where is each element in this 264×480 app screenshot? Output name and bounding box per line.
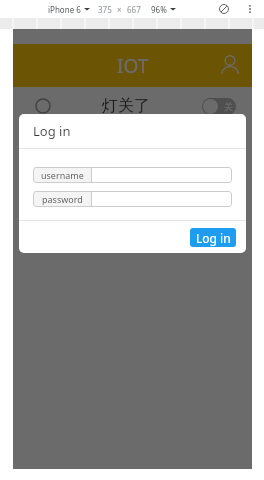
- button[interactable]: More options: [243, 2, 257, 16]
- button[interactable]: Account: [218, 54, 242, 78]
- button[interactable]: Toggle light: [202, 98, 236, 115]
- button[interactable]: [92, 167, 232, 183]
- staticText: 667: [127, 4, 141, 15]
- staticText: password: [42, 193, 83, 205]
- button[interactable]: 灯关了: [13, 87, 252, 125]
- staticText: Log in: [33, 122, 71, 140]
- staticText: Log in: [196, 230, 231, 246]
- staticText: 关: [224, 101, 233, 112]
- button[interactable]: [92, 191, 232, 207]
- staticText: IOT: [117, 53, 149, 79]
- staticText: username: [41, 169, 84, 181]
- staticText: 灯关了: [102, 96, 150, 116]
- staticText: iPhone 6: [48, 4, 81, 15]
- button[interactable]: Rotate: [217, 2, 231, 16]
- staticText: ×: [117, 4, 122, 15]
- staticText: 96%: [151, 4, 167, 15]
- staticText: 375: [98, 4, 112, 15]
- button[interactable]: Log in: [190, 228, 236, 247]
